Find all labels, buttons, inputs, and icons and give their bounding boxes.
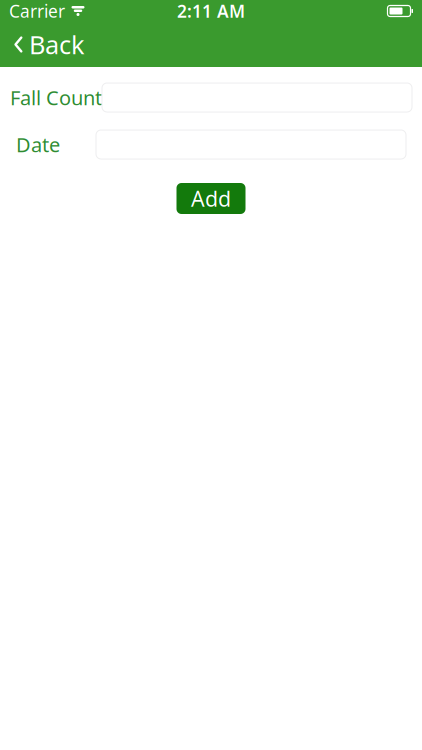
staticText: Fall Count — [10, 84, 102, 111]
staticText: Add — [191, 184, 231, 213]
staticText: Back — [29, 28, 85, 61]
button[interactable]: Back — [0, 22, 95, 67]
staticText: Date — [16, 131, 60, 158]
staticText: 2:11 AM — [177, 0, 245, 22]
staticText: Carrier — [9, 0, 65, 22]
button[interactable]: Add — [176, 183, 245, 214]
